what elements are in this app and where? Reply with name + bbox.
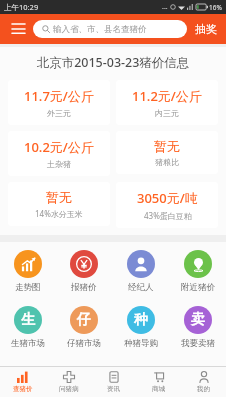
staticText: 报猪价 [71, 282, 97, 293]
staticText: 输入省、市、县名查猪价 [53, 24, 147, 35]
staticText: 3050元/吨 [137, 189, 198, 207]
staticText: 种 [134, 311, 148, 329]
staticText: 43%蛋白豆粕 [144, 210, 192, 221]
staticText: 11.7元/公斤 [24, 87, 94, 105]
button[interactable]: 暂无 [8, 182, 110, 226]
staticText: 暂无 [154, 138, 180, 154]
staticText: 生 [21, 311, 35, 329]
staticText: 附近猪价 [181, 282, 215, 293]
button[interactable]: 资讯 [91, 367, 136, 397]
staticText: 16% [209, 3, 222, 12]
button[interactable]: 仔 [56, 304, 112, 351]
button[interactable]: 经纪人 [112, 248, 169, 295]
button[interactable]: 3050元/吨 [116, 182, 218, 228]
button[interactable]: 11.2元/公斤 [116, 80, 218, 125]
staticText: 仔猪市场 [67, 338, 101, 349]
staticText: 仔 [77, 311, 91, 329]
button[interactable]: 10.2元/公斤 [8, 131, 110, 176]
staticText: 种猪导购 [124, 338, 158, 349]
staticText: 上午10:29 [4, 2, 39, 12]
staticText: 经纪人 [128, 282, 154, 293]
button[interactable]: 问猪病 [46, 367, 91, 397]
staticText: 走势图 [15, 282, 41, 293]
staticText: 问猪病 [59, 385, 79, 393]
button[interactable]: 附近猪价 [169, 248, 226, 295]
staticText: 卖 [191, 311, 205, 329]
button[interactable]: 商城 [136, 367, 181, 397]
staticText: 我的 [197, 385, 210, 393]
button[interactable]: 种 [112, 304, 169, 351]
staticText: 11.2元/公斤 [132, 87, 202, 105]
staticText: 我要卖猪 [181, 338, 215, 349]
button[interactable]: 抽奖 [193, 19, 219, 39]
button[interactable]: Menu [7, 18, 29, 40]
staticText: 北京市2015-03-23猪价信息 [0, 54, 226, 71]
staticText: 资讯 [107, 385, 120, 393]
button[interactable]: 我的 [181, 367, 226, 397]
button[interactable]: 11.7元/公斤 [8, 80, 110, 125]
staticText: 10.2元/公斤 [24, 138, 94, 156]
staticText: 查猪价 [13, 385, 33, 393]
staticText: 土杂猪 [47, 159, 71, 169]
button[interactable]: 报猪价 [56, 248, 112, 295]
staticText: 内三元 [155, 108, 179, 118]
button[interactable]: 查猪价 [0, 367, 46, 397]
staticText: 猪粮比 [155, 157, 179, 167]
button[interactable]: 走势图 [0, 248, 56, 295]
button[interactable]: 生 [0, 304, 56, 351]
staticText: 商城 [152, 385, 165, 393]
button[interactable]: 输入省、市、县名查猪价 [33, 20, 187, 38]
staticText: 外三元 [47, 108, 71, 118]
staticText: ... [162, 2, 168, 12]
button[interactable]: 卖 [169, 304, 226, 351]
staticText: 暂无 [46, 189, 72, 205]
staticText: 抽奖 [195, 22, 217, 36]
button[interactable]: 暂无 [116, 131, 218, 174]
staticText: 生猪市场 [11, 338, 45, 349]
staticText: 14%水分玉米 [35, 208, 83, 219]
